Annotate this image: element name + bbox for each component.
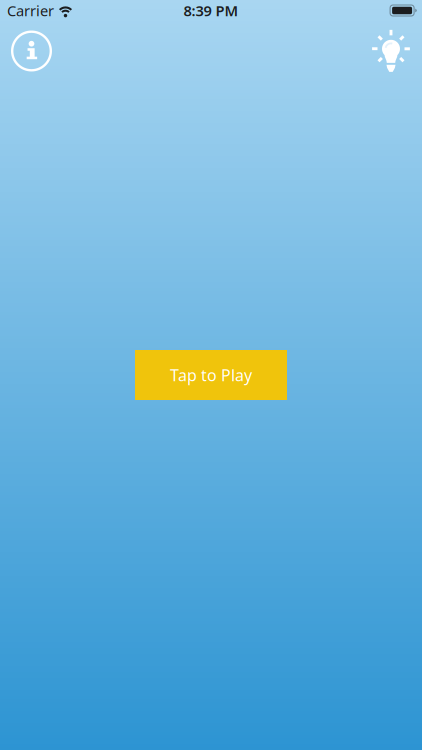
staticText: Tap to Play — [170, 364, 252, 386]
staticText: Carrier — [7, 1, 54, 20]
button[interactable]: Hint — [371, 30, 411, 72]
button[interactable]: Info — [11, 30, 52, 71]
staticText: 8:39 PM — [183, 1, 238, 20]
button[interactable]: Tap to Play — [135, 350, 287, 400]
